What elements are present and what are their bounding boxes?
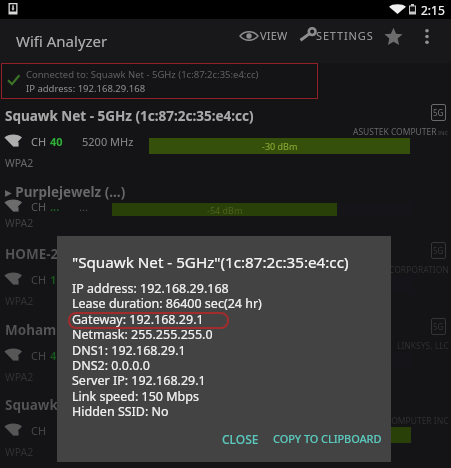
staticText: WPA2 <box>5 216 34 230</box>
button[interactable]: SETTINGS <box>297 19 377 52</box>
button[interactable]: HOME-2... <box>0 241 451 317</box>
staticText: Mohammad <box>5 321 86 339</box>
button[interactable]: COPY TO CLIPBOARD <box>265 425 390 452</box>
staticText: HOME-2... <box>5 245 70 263</box>
staticText: CH <box>31 348 47 363</box>
staticText: ... <box>50 199 60 214</box>
staticText: Squawk Net - 5GHz (1c:87:2c:35:e4:cc) <box>5 107 254 125</box>
staticText: Lease duration: 86400 sec(24 hr) <box>72 295 262 312</box>
staticText: LINKSYS, LLC <box>397 340 449 352</box>
staticText: 5G <box>433 245 444 256</box>
staticText: DNS1: 192.168.29.1 <box>72 342 186 359</box>
staticText: Wifi Analyzer <box>16 31 108 51</box>
button[interactable]: Mohammad <box>0 317 451 393</box>
staticText: VIEW <box>260 28 288 43</box>
staticText: CLOSE <box>222 431 259 447</box>
staticText: -30 dBm <box>262 140 298 152</box>
staticText: Server IP: 192.168.29.1 <box>72 372 206 389</box>
staticText: Squawk N... <box>5 396 84 414</box>
button[interactable]: ▸ Purplejewelz (...) <box>0 179 451 241</box>
staticText: CH <box>31 272 47 287</box>
staticText: INC <box>438 129 449 137</box>
staticText: "Squawk Net - 5GHz"(1c:87:2c:35:e4:cc) <box>72 252 349 273</box>
staticText: ... <box>79 199 88 214</box>
staticText: Link speed: 150 Mbps <box>72 388 199 405</box>
staticText: 5200 MHz <box>82 134 134 149</box>
button[interactable]: CLOSE <box>214 425 267 453</box>
button[interactable]: Squawk N... <box>0 392 451 468</box>
staticText: -54 dBm <box>207 204 243 216</box>
staticText: ASUSTEK COMPUTER <box>353 126 437 138</box>
staticText: IP address: 192.168.29.168 <box>26 82 146 95</box>
staticText: 5G <box>433 107 444 118</box>
staticText: ▸ Purplejewelz (...) <box>5 183 126 201</box>
staticText: Netmask: 255.255.255.0 <box>72 326 213 343</box>
staticText: WPA2 <box>5 156 34 170</box>
staticText: COMPUTER INC <box>386 415 449 427</box>
staticText: Connected to: Squawk Net - 5GHz (1c:87:2… <box>26 68 259 81</box>
button[interactable]: VIEW <box>237 19 291 52</box>
staticText: DNS2: 0.0.0.0 <box>72 357 150 374</box>
staticText: IP address: 192.168.29.168 <box>72 280 229 297</box>
staticText: CH <box>31 134 47 149</box>
staticText: 2:15 <box>421 2 445 18</box>
staticText: CH <box>31 423 47 438</box>
staticText: Hidden SSID: No <box>72 403 169 420</box>
staticText: 40 <box>50 134 63 149</box>
staticText: WPA2 <box>5 294 34 308</box>
staticText: 4 <box>50 348 57 363</box>
staticText: 1 <box>50 272 57 287</box>
staticText: WPA2 <box>5 445 34 459</box>
button[interactable]: Favorite <box>377 21 407 51</box>
staticText: CORPORATION <box>389 264 449 276</box>
button[interactable]: More options <box>412 21 442 51</box>
staticText: 5G <box>433 321 444 332</box>
staticText: CH <box>31 199 47 214</box>
staticText: Gateway: 192.168.29.1 <box>72 311 204 328</box>
staticText: SETTINGS <box>316 28 374 43</box>
staticText: COPY TO CLIPBOARD <box>273 431 382 446</box>
staticText: WPA2 <box>5 370 34 384</box>
button[interactable]: Squawk Net - 5GHz (1c:87:2c:35:e4:cc) <box>0 103 451 179</box>
